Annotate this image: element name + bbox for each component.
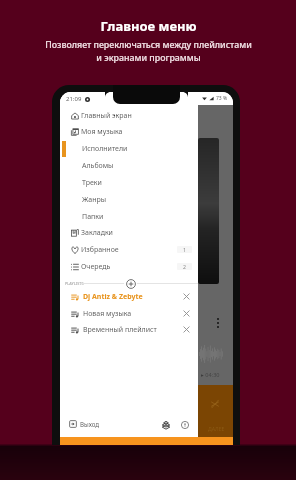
button[interactable]: Очередь (60, 258, 198, 275)
staticText: Избранное (81, 245, 119, 255)
button[interactable]: More options (217, 318, 219, 328)
button[interactable]: About (178, 418, 191, 431)
staticText: Закладки (81, 228, 113, 238)
staticText: Главный экран (81, 111, 132, 121)
button[interactable]: Исполнители (60, 140, 198, 157)
button[interactable]: Add playlist (124, 277, 137, 290)
button[interactable]: Избранное (60, 241, 198, 258)
button[interactable]: Жанры (60, 191, 198, 208)
button[interactable]: Треки (60, 174, 198, 191)
button[interactable]: Папки (60, 208, 198, 225)
staticText: Очередь (81, 262, 111, 272)
staticText: 1 (183, 246, 186, 253)
button[interactable]: Settings (159, 418, 172, 431)
staticText: Жанры (82, 195, 107, 205)
button[interactable]: Dj Antiz & Zebyte (60, 288, 198, 305)
staticText: 21:09 (66, 95, 82, 103)
staticText: Выход (80, 420, 100, 428)
staticText: PLAYLISTS (65, 281, 84, 286)
staticText: Dj Antiz & Zebyte (83, 292, 143, 302)
staticText: ▸ 04:30 (201, 371, 220, 379)
button[interactable]: Альбомы (60, 157, 198, 174)
button[interactable]: Выход (69, 420, 100, 428)
staticText: Главное меню (100, 17, 197, 35)
staticText: 2 (183, 263, 186, 270)
button[interactable]: Временный плейлист (60, 321, 198, 338)
button[interactable]: Remove playlist (180, 323, 193, 336)
staticText: ДАЛЕЕ (208, 425, 225, 432)
button[interactable]: Remove playlist (180, 307, 193, 320)
staticText: Новая музыка (83, 309, 132, 319)
staticText: Альбомы (82, 161, 114, 171)
button[interactable]: Новая музыка (60, 305, 198, 322)
staticText: 73 % (216, 95, 228, 102)
staticText: Позволяет переключаться между плейлистам… (45, 39, 252, 63)
staticText: Исполнители (82, 144, 128, 154)
staticText: Моя музыка (81, 127, 123, 137)
button[interactable]: Закладки (60, 224, 198, 241)
staticText: Папки (82, 212, 104, 222)
button[interactable]: Remove playlist (180, 290, 193, 303)
staticText: Треки (82, 178, 102, 188)
staticText: Временный плейлист (83, 325, 157, 335)
button[interactable]: Главный экран (60, 107, 198, 124)
button[interactable]: Моя музыка (60, 123, 198, 140)
